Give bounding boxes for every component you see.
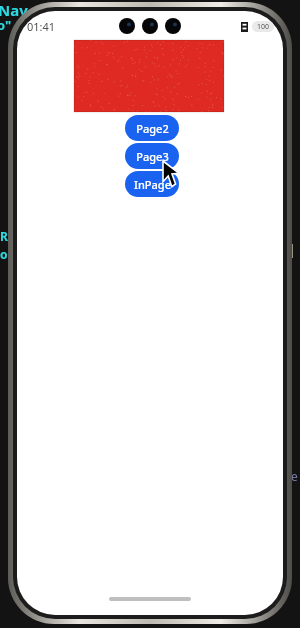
staticText: e [291,468,298,484]
staticText: 100 [257,22,270,32]
button[interactable]: Page3 [125,143,179,169]
staticText: 01:41 [27,19,56,34]
button[interactable]: InPage [125,171,179,197]
staticText: Page3 [136,149,169,164]
staticText: InPage [134,177,171,192]
button[interactable]: Page2 [125,115,179,141]
staticText: ol [0,246,12,262]
staticText: R [0,228,8,244]
staticText: o" [0,16,12,34]
staticText: Page2 [136,121,169,136]
staticText: Nav [0,0,28,20]
